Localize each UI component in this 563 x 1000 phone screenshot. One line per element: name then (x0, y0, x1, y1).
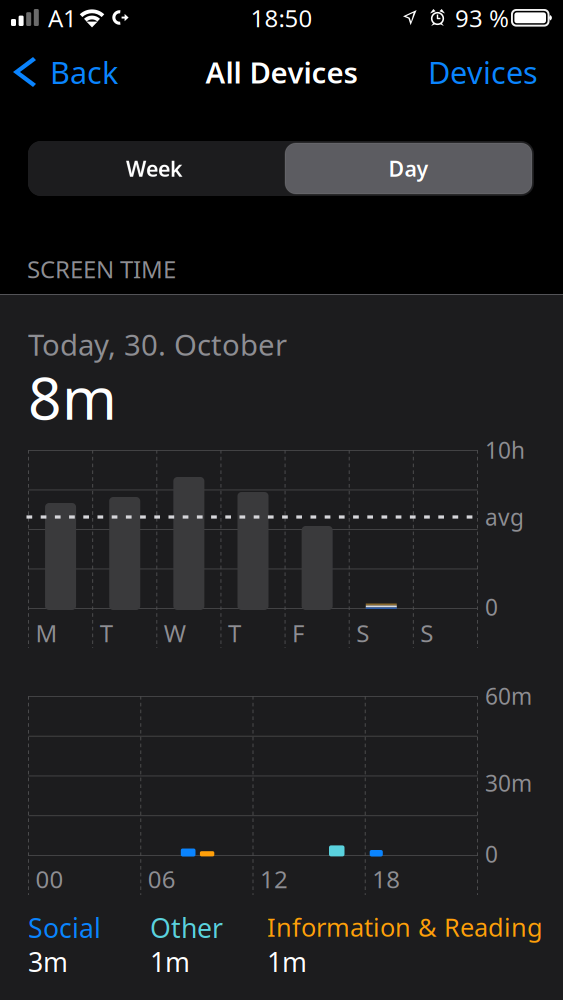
button[interactable]: Devices (0, 0, 563, 1000)
staticText: 8m (28, 358, 117, 436)
staticText: A1 (48, 2, 77, 34)
staticText: F (292, 617, 304, 649)
staticText: Back (50, 52, 118, 92)
staticText: 30m (485, 768, 532, 798)
staticText: T (228, 617, 241, 649)
staticText: Social (28, 910, 101, 945)
staticText: Information & Reading (267, 910, 543, 944)
button[interactable]: Day (281, 141, 535, 196)
staticText: Other (150, 910, 223, 945)
staticText: 0 (485, 839, 498, 869)
button[interactable]: Back (0, 0, 563, 1000)
staticText: M (35, 617, 57, 649)
staticText: 93 % (455, 2, 509, 34)
staticText: 1m (267, 944, 307, 979)
staticText: Week (126, 154, 183, 183)
staticText: S (356, 617, 369, 649)
staticText: avg (485, 502, 524, 532)
staticText: 60m (485, 681, 532, 711)
staticText: Today, 30. October (28, 325, 287, 364)
button[interactable]: Week (28, 141, 281, 196)
staticText: S (420, 617, 433, 649)
staticText: 06 (148, 863, 176, 895)
staticText: 18 (372, 863, 400, 895)
staticText: 00 (35, 863, 63, 895)
staticText: 0 (485, 592, 498, 622)
staticText: 1m (150, 944, 190, 979)
staticText: 10h (485, 435, 525, 465)
staticText: Devices (428, 52, 538, 92)
staticText: 12 (260, 863, 288, 895)
staticText: All Devices (205, 52, 357, 91)
staticText: W (164, 617, 186, 649)
staticText: 3m (28, 944, 68, 979)
staticText: T (100, 617, 113, 649)
staticText: SCREEN TIME (27, 253, 176, 285)
staticText: 18:50 (250, 2, 312, 34)
staticText: Day (388, 154, 428, 183)
